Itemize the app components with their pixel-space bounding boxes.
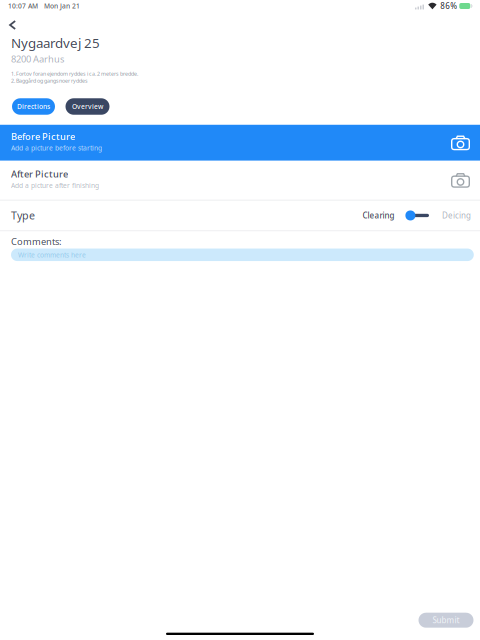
staticText: Overview bbox=[72, 102, 103, 111]
staticText: Nygaardvej 25 bbox=[11, 34, 100, 52]
staticText: 10:07 AM Mon Jan 21 bbox=[8, 2, 80, 10]
button[interactable]: After Picture bbox=[0, 161, 480, 200]
staticText: Before Picture bbox=[11, 130, 75, 142]
staticText: Directions bbox=[17, 102, 50, 111]
staticText: Clearing bbox=[362, 210, 394, 221]
staticText: Comments: bbox=[11, 235, 62, 248]
staticText: Type bbox=[11, 208, 35, 223]
staticText: 1. Fortov foran ejendom ryddes i ca. 2 m… bbox=[11, 70, 138, 77]
button[interactable]: Directions bbox=[12, 98, 55, 115]
button[interactable]: Back bbox=[1, 16, 24, 34]
staticText: 8200 Aarhus bbox=[11, 53, 64, 65]
staticText: Deicing bbox=[442, 210, 471, 221]
button[interactable]: Submit bbox=[418, 613, 473, 628]
staticText: Submit bbox=[432, 615, 459, 625]
staticText: After Picture bbox=[11, 168, 68, 180]
button[interactable]: Overview bbox=[65, 98, 109, 115]
staticText: Write comments here bbox=[18, 250, 86, 259]
staticText: Add a picture before starting bbox=[11, 143, 102, 152]
button[interactable]: Write comments here bbox=[11, 249, 474, 261]
button[interactable]: Switch type bbox=[405, 208, 429, 222]
staticText: Add a picture after finishing bbox=[11, 181, 99, 190]
staticText: 86% bbox=[440, 1, 457, 11]
staticText: 2. Baggård og gangsnoer ryddes bbox=[11, 77, 88, 84]
button[interactable]: Before Picture bbox=[0, 125, 480, 161]
